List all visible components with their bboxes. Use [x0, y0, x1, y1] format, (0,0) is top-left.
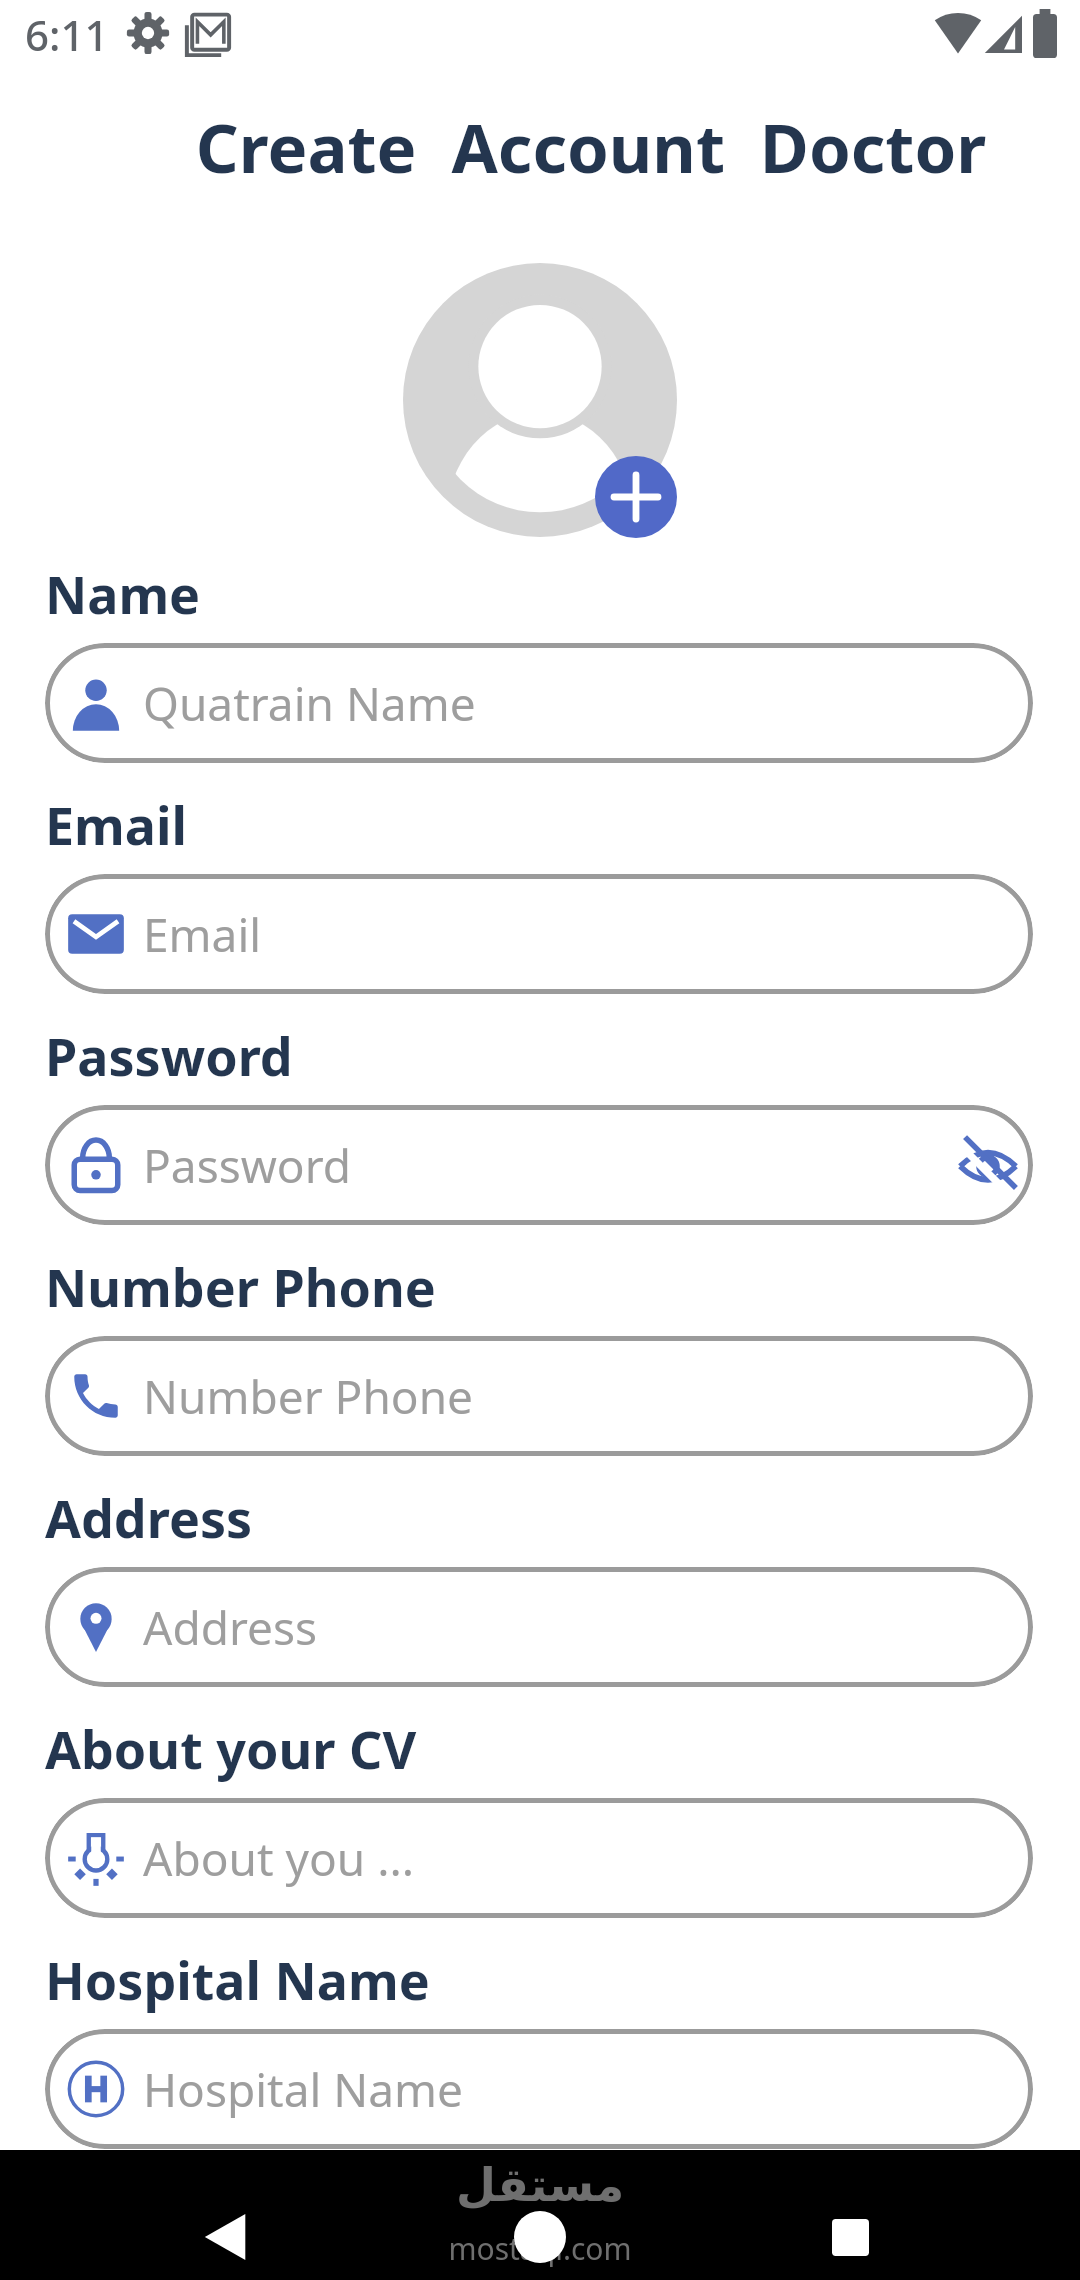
staticText: mostaql.com: [0, 2228, 1080, 2269]
staticText: Password: [143, 1134, 352, 1197]
staticText: Number Phone: [143, 1365, 474, 1428]
staticText: Quatrain Name: [143, 672, 476, 735]
button[interactable]: Password: [45, 1105, 1033, 1225]
staticText: Hospital Name: [45, 1944, 430, 2015]
staticText: Name: [45, 558, 201, 629]
staticText: Email: [143, 903, 262, 966]
staticText: مستقل: [0, 2158, 1080, 2212]
staticText: Address: [143, 1596, 318, 1659]
staticText: Hospital Name: [143, 2058, 464, 2121]
button[interactable]: Number Phone: [45, 1336, 1033, 1456]
staticText: About your CV: [45, 1713, 417, 1784]
staticText: Create Account Doctor: [51, 101, 1080, 192]
staticText: Password: [45, 1020, 293, 1091]
button[interactable]: About you ...: [45, 1798, 1033, 1918]
button[interactable]: [595, 456, 677, 538]
staticText: About you ...: [143, 1827, 415, 1890]
button[interactable]: [196, 2207, 256, 2267]
staticText: Number Phone: [45, 1251, 436, 1322]
button[interactable]: Email: [45, 874, 1033, 994]
button[interactable]: [510, 2207, 570, 2267]
button[interactable]: Address: [45, 1567, 1033, 1687]
button[interactable]: [820, 2207, 880, 2267]
staticText: Email: [45, 789, 188, 860]
button[interactable]: Hospital Name: [45, 2029, 1033, 2149]
button[interactable]: Quatrain Name: [45, 643, 1033, 763]
staticText: 6:11: [25, 6, 109, 63]
staticText: Address: [45, 1482, 253, 1553]
